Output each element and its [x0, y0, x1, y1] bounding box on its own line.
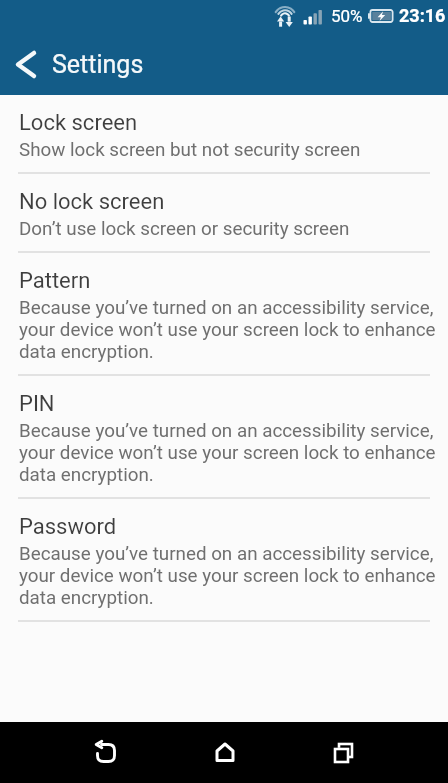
button[interactable]: PIN [0, 376, 448, 497]
staticText: Because you’ve turned on an accessibilit… [19, 543, 436, 609]
button[interactable]: Lock screen [0, 95, 448, 172]
staticText: Lock screen [19, 110, 138, 136]
staticText: PIN [19, 391, 55, 417]
staticText: 50% [331, 6, 363, 26]
staticText: No lock screen [19, 189, 165, 215]
button[interactable] [165, 722, 284, 783]
staticText: Password [19, 514, 117, 540]
staticText: Don’t use lock screen or security screen [19, 218, 350, 240]
staticText: Because you’ve turned on an accessibilit… [19, 297, 436, 363]
staticText: Show lock screen but not security screen [19, 139, 361, 161]
button[interactable] [46, 722, 165, 783]
staticText: 23:16 [399, 5, 446, 26]
button[interactable]: Settings [0, 33, 448, 95]
staticText: Settings [52, 50, 144, 79]
button[interactable]: Pattern [0, 253, 448, 374]
staticText: Pattern [19, 268, 91, 294]
button[interactable]: No lock screen [0, 174, 448, 251]
staticText: Because you’ve turned on an accessibilit… [19, 420, 436, 486]
button[interactable] [284, 722, 403, 783]
button[interactable]: Password [0, 499, 448, 620]
